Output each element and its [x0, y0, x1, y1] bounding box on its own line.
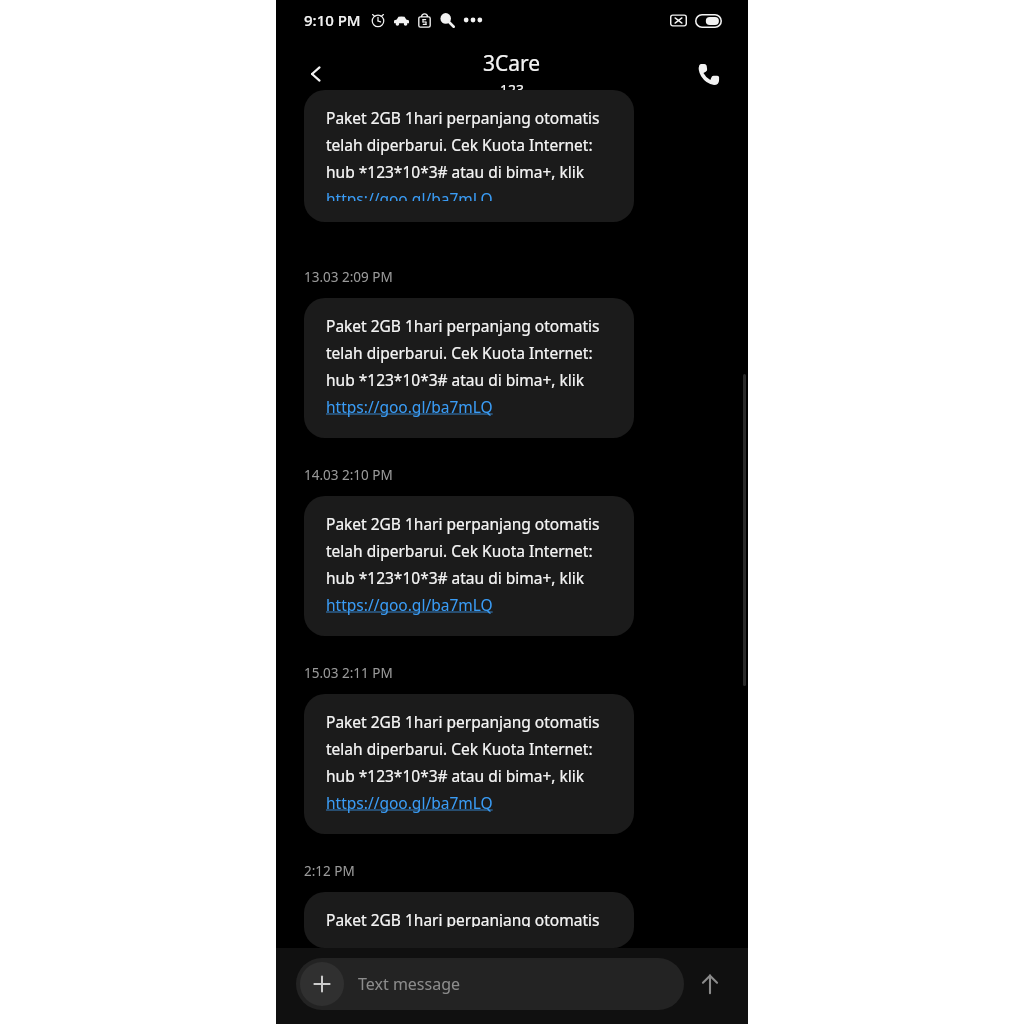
staticText: Paket 2GB 1hari perpanjang otomatis — [326, 711, 600, 732]
button[interactable]: Attach — [296, 958, 684, 1010]
staticText: Text message — [358, 973, 461, 995]
staticText: https://goo.gl/ba7mLQ — [326, 188, 493, 201]
staticText: https://goo.gl/ba7mLQ — [326, 594, 493, 615]
button[interactable]: Attach — [300, 962, 344, 1006]
staticText: https://goo.gl/ba7mLQ — [326, 396, 493, 417]
button[interactable]: Send — [684, 958, 736, 1010]
button[interactable]: Paket 2GB 1hari perpanjang otomatis — [304, 694, 634, 834]
staticText: https://goo.gl/ba7mLQ — [326, 792, 493, 813]
staticText: hub *123*10*3# atau di bima+, klik — [326, 765, 585, 786]
button[interactable]: Paket 2GB 1hari perpanjang otomatis — [304, 90, 634, 222]
staticText: telah diperbarui. Cek Kuota Internet: — [326, 738, 593, 759]
staticText: 123 — [500, 80, 525, 99]
staticText: 15.03 2:11 PM — [304, 664, 393, 682]
staticText: 2:12 PM — [304, 862, 355, 880]
staticText: 14.03 2:10 PM — [304, 466, 393, 484]
button[interactable]: Call — [684, 50, 732, 98]
staticText: telah diperbarui. Cek Kuota Internet: — [326, 342, 593, 363]
staticText: 13.03 2:09 PM — [304, 268, 393, 286]
button[interactable]: 3Care — [473, 47, 551, 101]
staticText: Paket 2GB 1hari perpanjang otomatis — [326, 315, 600, 336]
staticText: hub *123*10*3# atau di bima+, klik — [326, 567, 585, 588]
staticText: 3Care — [483, 49, 541, 78]
staticText: Paket 2GB 1hari perpanjang otomatis — [326, 513, 600, 534]
staticText: hub *123*10*3# atau di bima+, klik — [326, 369, 585, 390]
staticText: hub *123*10*3# atau di bima+, klik — [326, 161, 585, 182]
staticText: 9:10 PM — [304, 10, 361, 30]
staticText: telah diperbarui. Cek Kuota Internet: — [326, 134, 593, 155]
button[interactable]: Back — [292, 50, 340, 98]
staticText: Paket 2GB 1hari perpanjang otomatis — [326, 107, 600, 128]
staticText: telah diperbarui. Cek Kuota Internet: — [326, 540, 593, 561]
button[interactable]: Paket 2GB 1hari perpanjang otomatis — [304, 892, 634, 948]
staticText: Paket 2GB 1hari perpanjang otomatis — [326, 909, 600, 927]
button[interactable]: Paket 2GB 1hari perpanjang otomatis — [304, 298, 634, 438]
button[interactable]: Paket 2GB 1hari perpanjang otomatis — [304, 496, 634, 636]
